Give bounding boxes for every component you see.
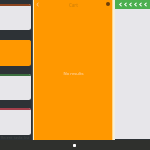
- button[interactable]: [0, 40, 31, 66]
- button[interactable]: Account: [103, 0, 112, 8]
- button[interactable]: [0, 74, 31, 100]
- staticText: Recent tasks list: [1, 135, 30, 140]
- button[interactable]: Home: [73, 144, 76, 147]
- staticText: Cart: [69, 2, 78, 8]
- button[interactable]: [0, 108, 31, 135]
- staticText: No results: [63, 71, 84, 77]
- button[interactable]: [115, 0, 150, 139]
- button[interactable]: Back: [33, 0, 42, 9]
- button[interactable]: [0, 4, 31, 30]
